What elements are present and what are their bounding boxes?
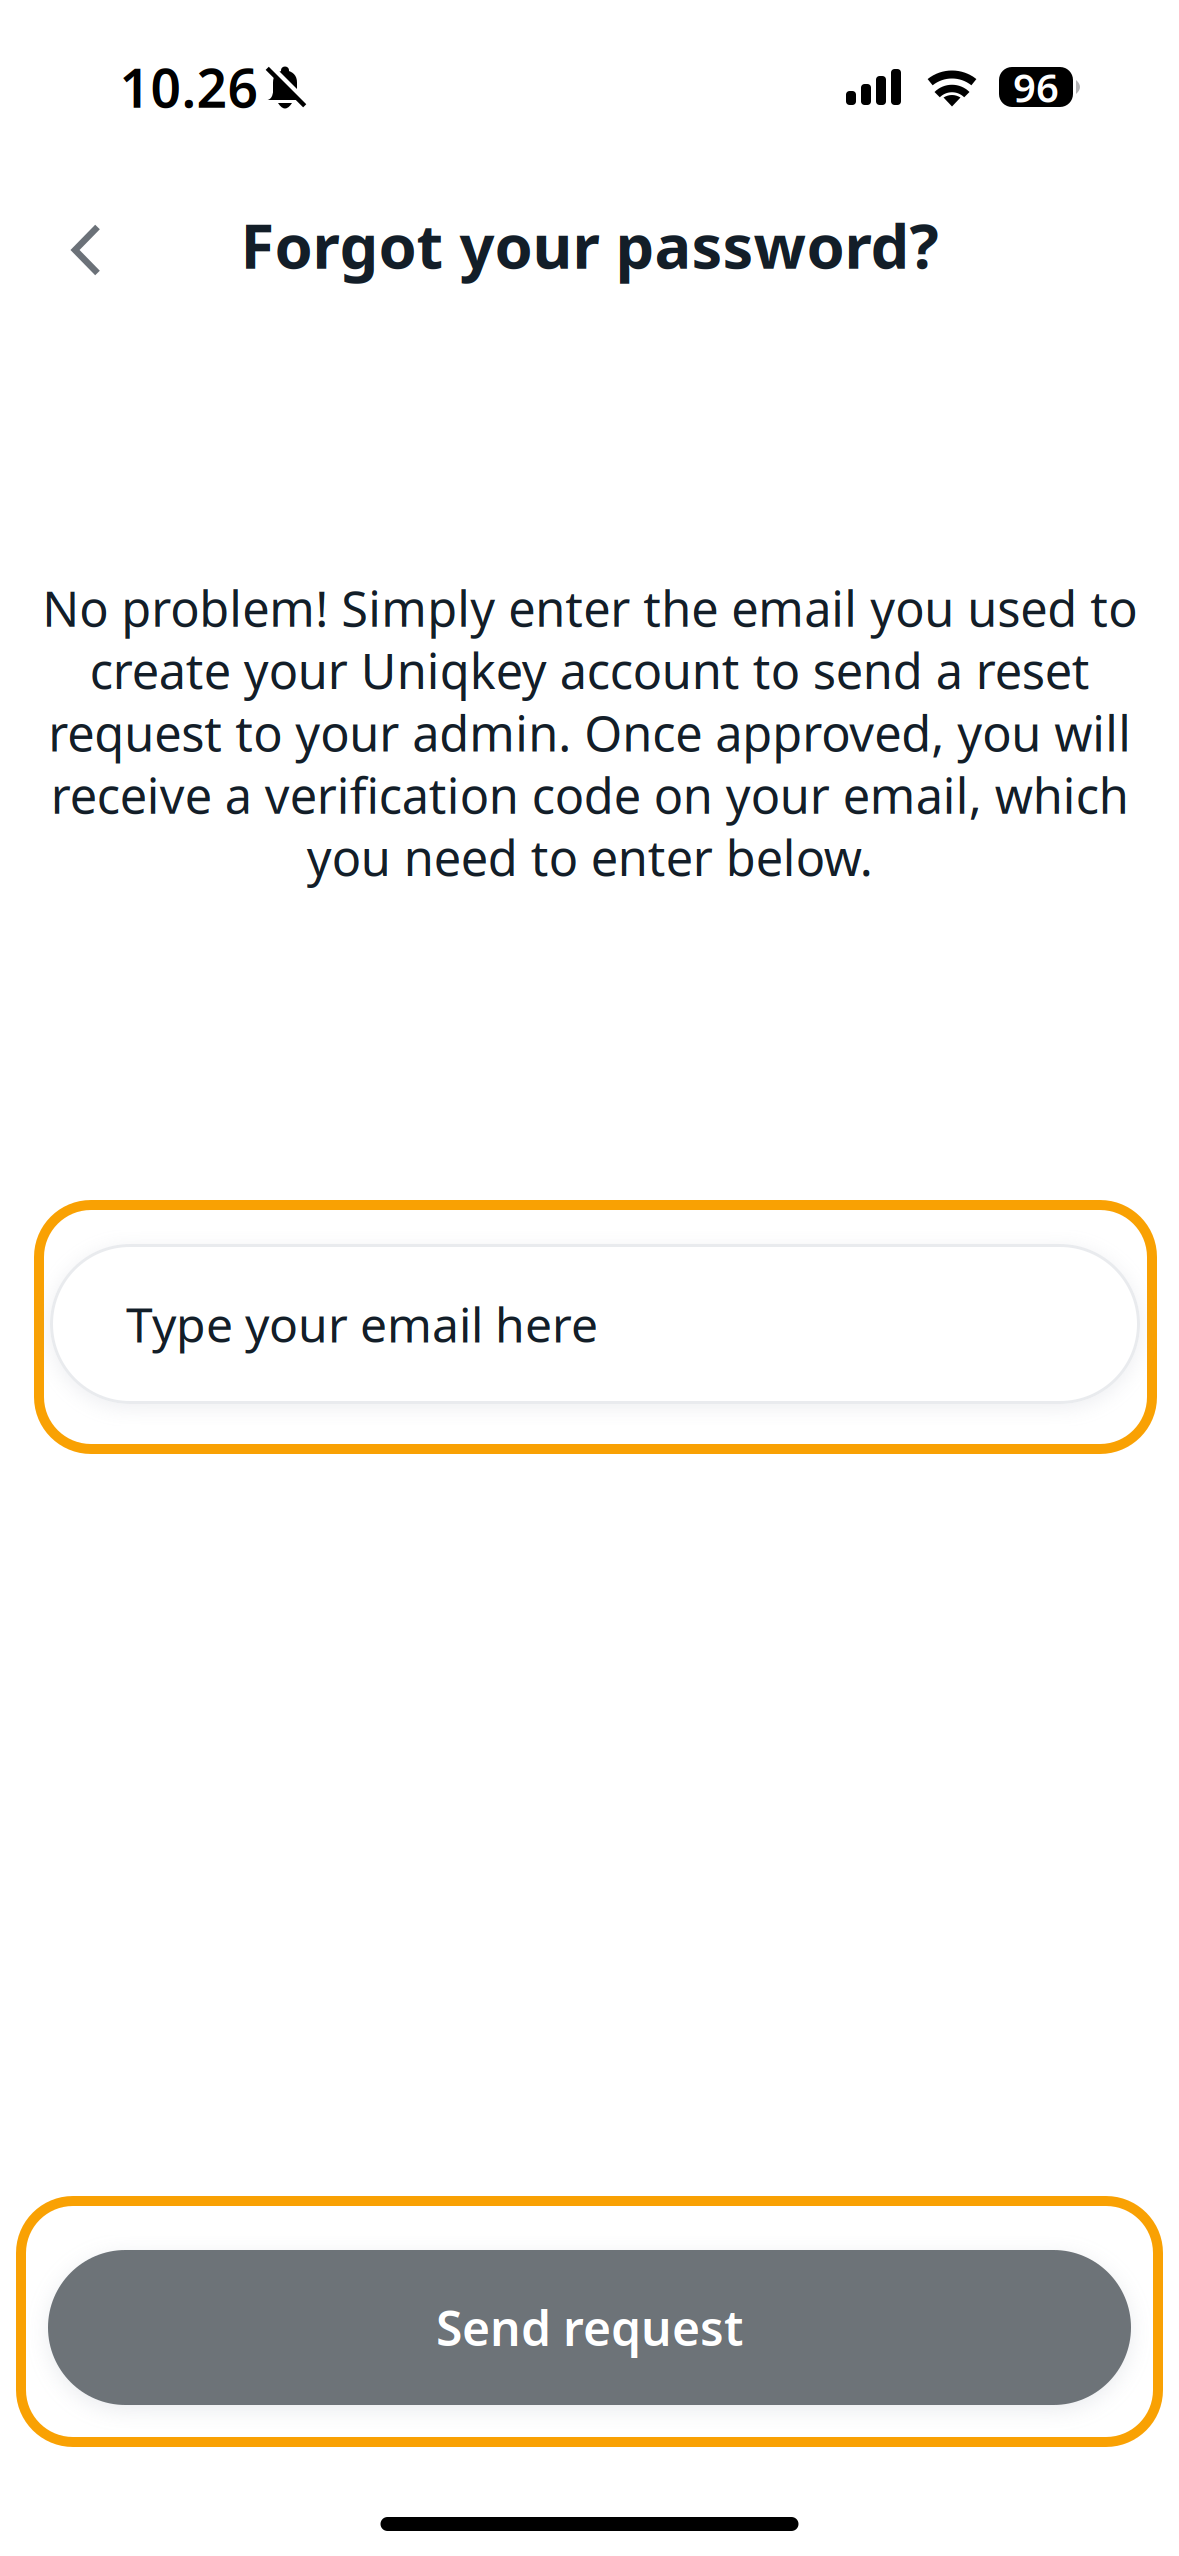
- staticText: 10.26: [119, 52, 258, 122]
- button[interactable]: Back: [31, 195, 141, 305]
- staticText: Send request: [436, 2296, 743, 2359]
- staticText: Type your email here: [126, 1292, 598, 1356]
- staticText: 96: [1013, 60, 1059, 113]
- button[interactable]: Send request: [16, 2196, 1163, 2447]
- staticText: Forgot your password?: [240, 204, 938, 286]
- button[interactable]: Type your email here: [34, 1200, 1157, 1454]
- staticText: No problem! Simply enter the email you u…: [42, 575, 1137, 890]
